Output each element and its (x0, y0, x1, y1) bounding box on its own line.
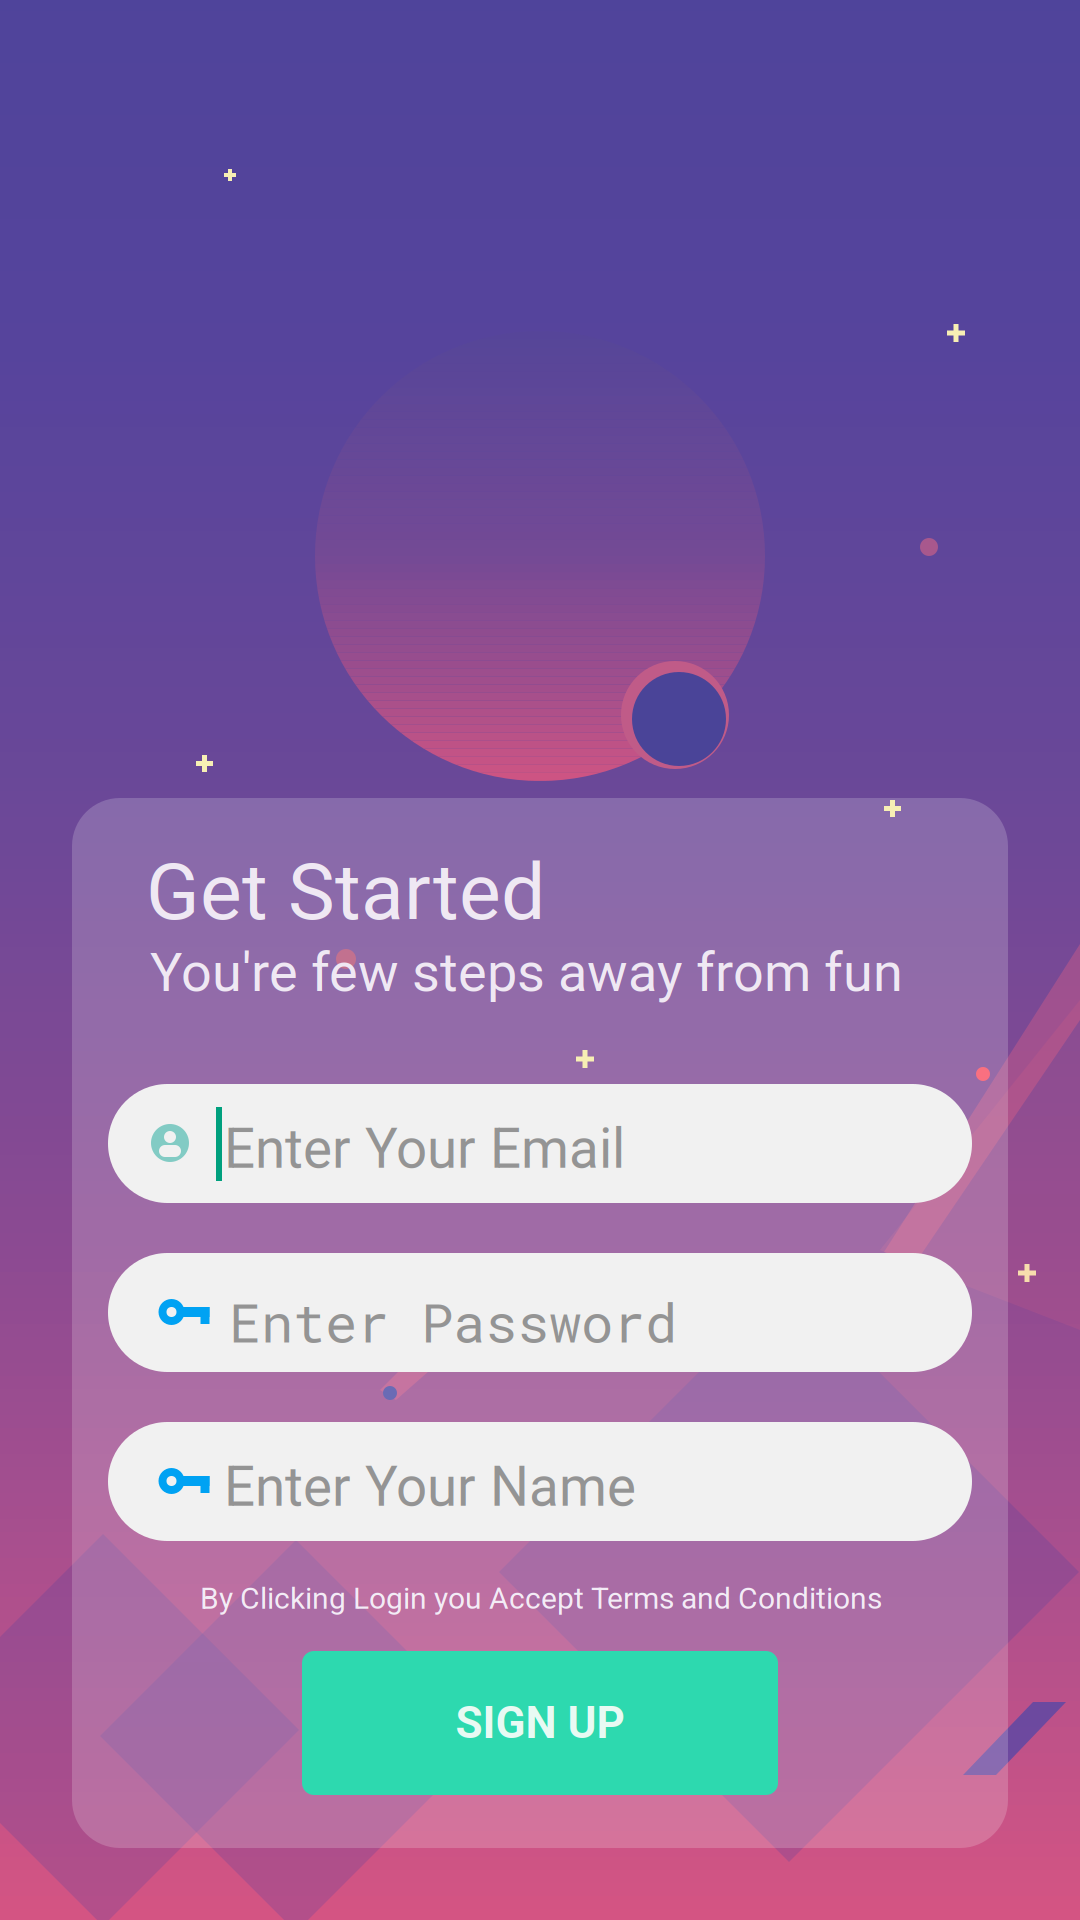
staticText: Enter Your Email (224, 1117, 625, 1181)
staticText: By Clicking Login you Accept Terms and C… (200, 1581, 882, 1616)
staticText: Enter Your Name (224, 1455, 636, 1519)
staticText: SIGN UP (455, 1697, 624, 1749)
button[interactable]: Enter Your Name (108, 1422, 972, 1541)
button[interactable]: Enter Your Email (108, 1084, 972, 1203)
staticText: You're few steps away from fun (150, 941, 903, 1004)
button[interactable]: Enter Password (108, 1253, 972, 1372)
button[interactable]: SIGN UP (302, 1651, 778, 1795)
staticText: Enter Password (229, 1286, 677, 1357)
staticText: Get Started (146, 846, 545, 938)
